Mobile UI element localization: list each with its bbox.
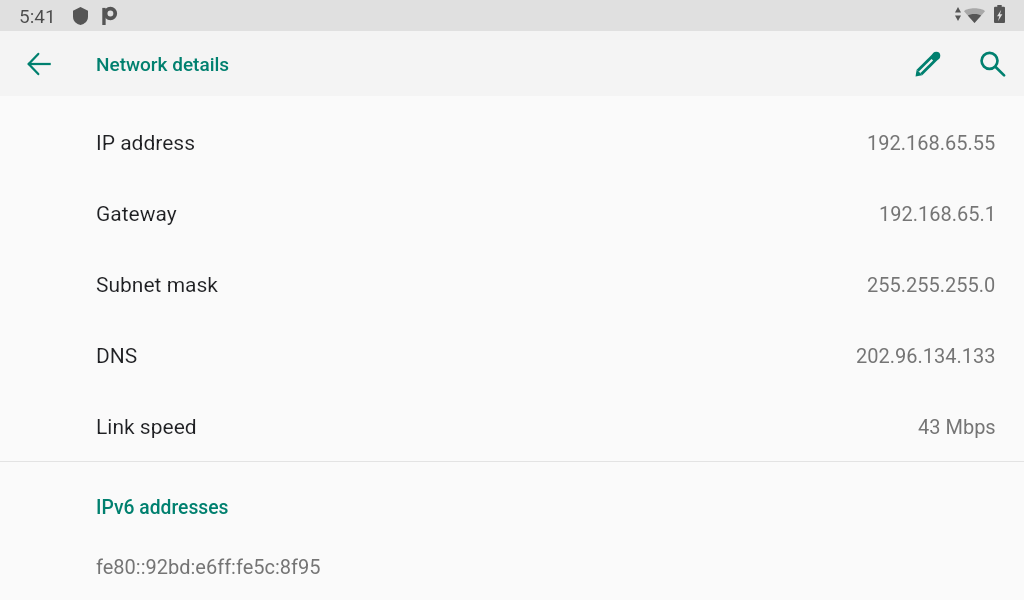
button[interactable]: Navigate up <box>0 31 77 96</box>
staticText: IP address <box>96 131 196 156</box>
staticText: fe80::92bd:e6ff:fe5c:8f95 <box>96 555 321 578</box>
button[interactable]: Search <box>960 32 1024 96</box>
button[interactable]: Edit <box>896 32 960 96</box>
button[interactable]: Link speed <box>0 390 1024 461</box>
staticText: 192.168.65.1 <box>879 202 996 225</box>
staticText: DNS <box>96 344 138 369</box>
staticText: 255.255.255.0 <box>867 273 996 296</box>
button[interactable]: DNS <box>0 319 1024 390</box>
staticText: Link speed <box>96 415 197 440</box>
staticText: 192.168.65.55 <box>867 131 996 154</box>
button[interactable]: Subnet mask <box>0 248 1024 319</box>
button[interactable]: Gateway <box>0 177 1024 248</box>
staticText: 43 Mbps <box>918 415 996 438</box>
staticText: Network details <box>96 53 230 75</box>
staticText: 5:41 <box>19 5 56 27</box>
button[interactable]: IP address <box>0 106 1024 177</box>
staticText: IPv6 addresses <box>96 496 229 519</box>
staticText: Subnet mask <box>96 273 218 298</box>
staticText: Gateway <box>96 202 177 227</box>
staticText: 202.96.134.133 <box>856 344 996 367</box>
